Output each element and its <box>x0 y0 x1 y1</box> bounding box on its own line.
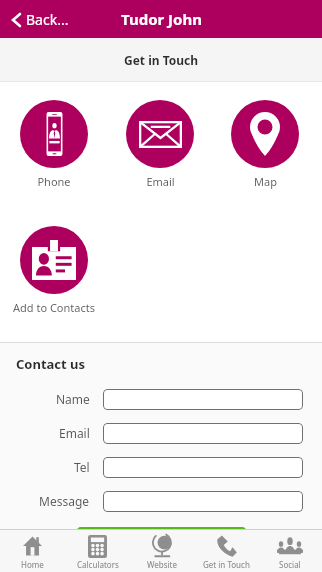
staticText: Tel <box>74 459 90 475</box>
button[interactable] <box>103 423 303 444</box>
staticText: Social <box>279 559 301 570</box>
button[interactable]: Map <box>213 100 317 189</box>
button[interactable]: Website <box>130 530 194 572</box>
button[interactable]: Calculators <box>65 530 130 572</box>
button[interactable] <box>103 457 303 478</box>
button[interactable]: Get in Touch <box>194 530 258 572</box>
staticText: Send <box>146 533 177 551</box>
staticText: Back... <box>26 10 69 29</box>
staticText: Message <box>39 493 90 509</box>
staticText: Add to Contacts <box>13 300 95 315</box>
staticText: Name <box>56 391 90 407</box>
staticText: Get in Touch <box>124 52 199 68</box>
staticText: Calculators <box>77 559 119 570</box>
staticText: Email <box>59 425 90 441</box>
button[interactable]: Home <box>0 530 65 572</box>
staticText: Tudor John <box>121 9 202 29</box>
staticText: Contact us <box>16 355 86 373</box>
button[interactable]: Back... <box>8 4 73 35</box>
staticText: Website <box>147 559 178 570</box>
button[interactable] <box>103 389 303 410</box>
staticText: Home <box>21 559 44 570</box>
staticText: Email <box>146 174 175 189</box>
button[interactable]: Add to Contacts <box>2 226 106 315</box>
button[interactable]: Social <box>258 530 322 572</box>
button[interactable]: Email <box>108 100 212 189</box>
staticText: Map <box>254 174 277 189</box>
staticText: Phone <box>37 174 71 189</box>
button[interactable]: Send <box>77 527 246 557</box>
button[interactable] <box>103 491 303 512</box>
button[interactable]: Phone <box>2 100 106 189</box>
staticText: Get in Touch <box>203 559 250 570</box>
